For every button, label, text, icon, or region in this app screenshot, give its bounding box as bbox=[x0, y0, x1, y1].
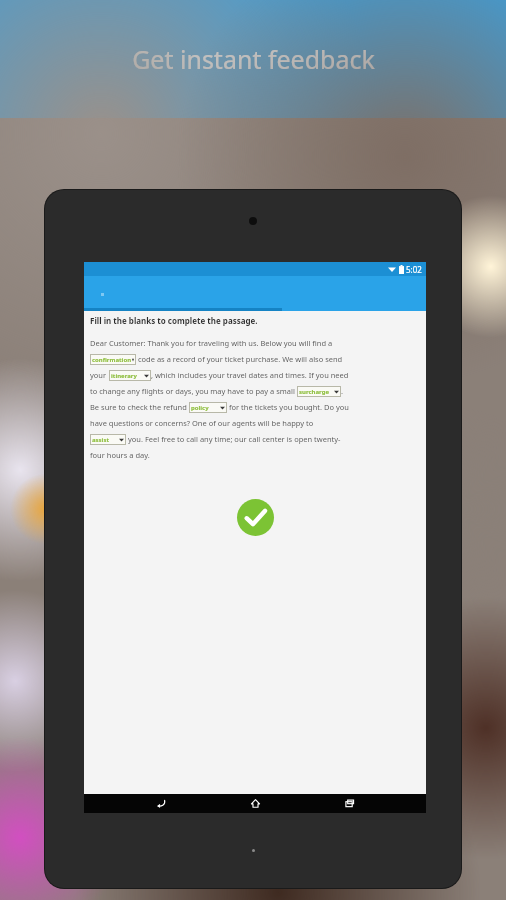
button[interactable]: policy bbox=[189, 402, 227, 413]
button[interactable]: assist bbox=[90, 434, 126, 445]
staticText: 5:02 bbox=[406, 264, 422, 275]
button[interactable]: confirmation bbox=[90, 354, 136, 365]
button[interactable]: itinerary bbox=[109, 370, 151, 381]
button[interactable]: Home bbox=[238, 794, 272, 813]
staticText: your bbox=[90, 370, 109, 380]
staticText: code as a record of your ticket purchase… bbox=[136, 354, 343, 364]
staticText: . bbox=[341, 386, 344, 396]
staticText: to change any flights or days, you may h… bbox=[90, 386, 297, 396]
staticText: you. Feel free to call any time; our cal… bbox=[126, 434, 341, 444]
staticText: Dear Customer: Thank you for traveling w… bbox=[90, 338, 333, 348]
staticText: confirmation bbox=[92, 356, 132, 364]
staticText: for the tickets you bought. Do you bbox=[227, 402, 349, 412]
button[interactable]: Recent apps bbox=[332, 794, 366, 813]
staticText: Get instant feedback bbox=[132, 42, 375, 76]
staticText: , which includes your travel dates and t… bbox=[151, 370, 349, 380]
button[interactable]: Menu bbox=[92, 284, 112, 304]
staticText: policy bbox=[191, 404, 209, 412]
staticText: have questions or concerns? One of our a… bbox=[90, 418, 314, 428]
staticText: itinerary bbox=[111, 372, 137, 380]
staticText: Fill in the blanks to complete the passa… bbox=[90, 315, 258, 326]
staticText: surcharge bbox=[299, 388, 330, 396]
button[interactable]: surcharge bbox=[297, 386, 341, 397]
staticText: four hours a day. bbox=[90, 450, 150, 460]
staticText: assist bbox=[92, 436, 110, 444]
button[interactable]: Back bbox=[144, 794, 178, 813]
staticText: Be sure to check the refund bbox=[90, 402, 189, 412]
